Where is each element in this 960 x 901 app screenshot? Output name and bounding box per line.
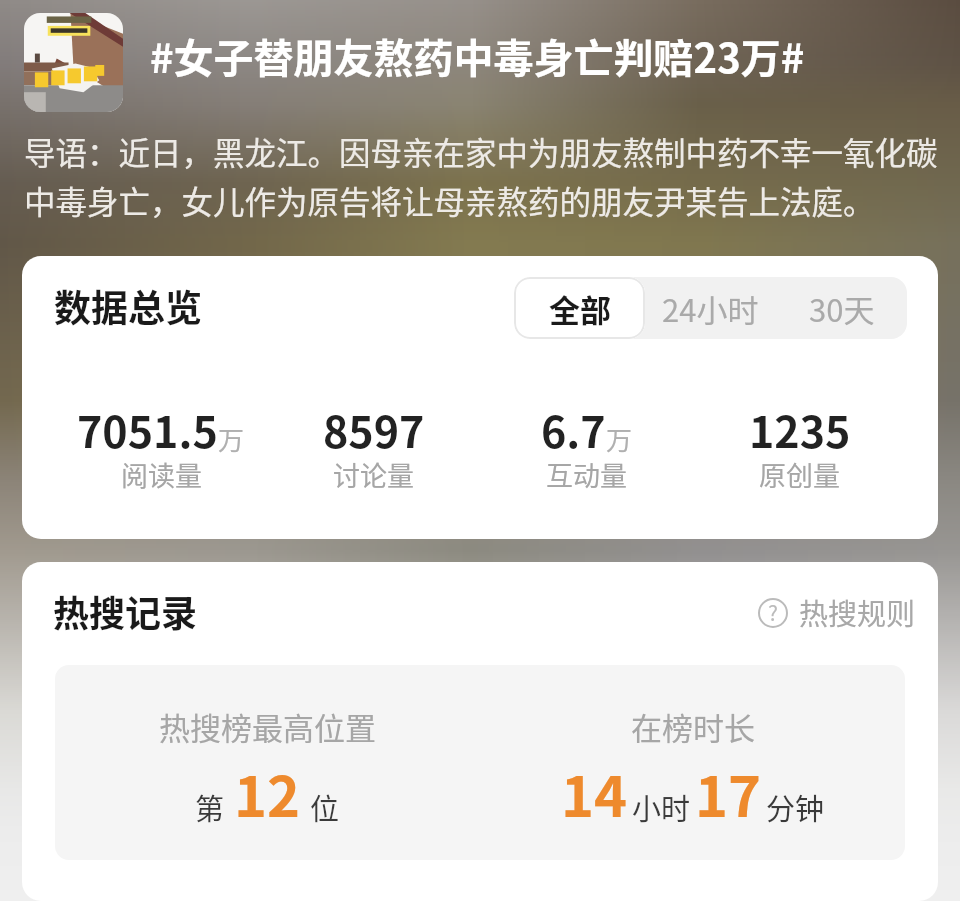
staticText: 数据总览	[54, 279, 202, 333]
staticText: 原创量	[759, 455, 840, 494]
staticText: 8597	[323, 398, 425, 460]
staticText: #女子替朋友熬药中毒身亡判赔23万#	[150, 27, 805, 85]
staticText: ?	[768, 597, 778, 627]
other: 热搜规则说明	[758, 598, 788, 628]
staticText: 在榜时长	[631, 704, 755, 749]
staticText: 热搜规则	[799, 591, 916, 633]
staticText: 第	[195, 786, 225, 828]
button[interactable]: 文章封面图	[24, 13, 123, 112]
staticText: 6.7	[541, 398, 606, 460]
staticText: 万	[218, 420, 245, 458]
staticText: 万	[606, 420, 633, 458]
staticText: 17	[695, 752, 762, 833]
staticText: 14	[561, 752, 628, 833]
button[interactable]: 热搜规则说明	[758, 592, 916, 634]
staticText: 互动量	[546, 455, 627, 494]
staticText: 分钟	[766, 786, 825, 828]
staticText: 小时	[632, 786, 691, 828]
staticText: 全部	[549, 286, 611, 331]
staticText: 导语：近日，黑龙江。因母亲在家中为朋友熬制中药不幸一氧化碳中毒身亡，女儿作为原告…	[24, 128, 940, 223]
staticText: 24小时	[662, 286, 759, 331]
staticText: 30天	[809, 286, 875, 331]
staticText: 1235	[749, 398, 851, 460]
staticText: 阅读量	[121, 455, 202, 494]
staticText: 位	[310, 786, 340, 828]
button[interactable]: 24小时	[645, 277, 776, 339]
staticText: 7051.5	[77, 398, 218, 460]
staticText: 热搜记录	[53, 585, 198, 637]
button[interactable]: 文章封面图	[24, 13, 940, 112]
button[interactable]: 全部	[514, 277, 645, 339]
staticText: 12	[234, 752, 301, 833]
button[interactable]: 30天	[776, 277, 907, 339]
staticText: 热搜榜最高位置	[159, 704, 376, 749]
staticText: 讨论量	[333, 455, 414, 494]
